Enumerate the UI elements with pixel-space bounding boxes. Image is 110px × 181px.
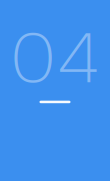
staticText: 04	[10, 15, 100, 103]
